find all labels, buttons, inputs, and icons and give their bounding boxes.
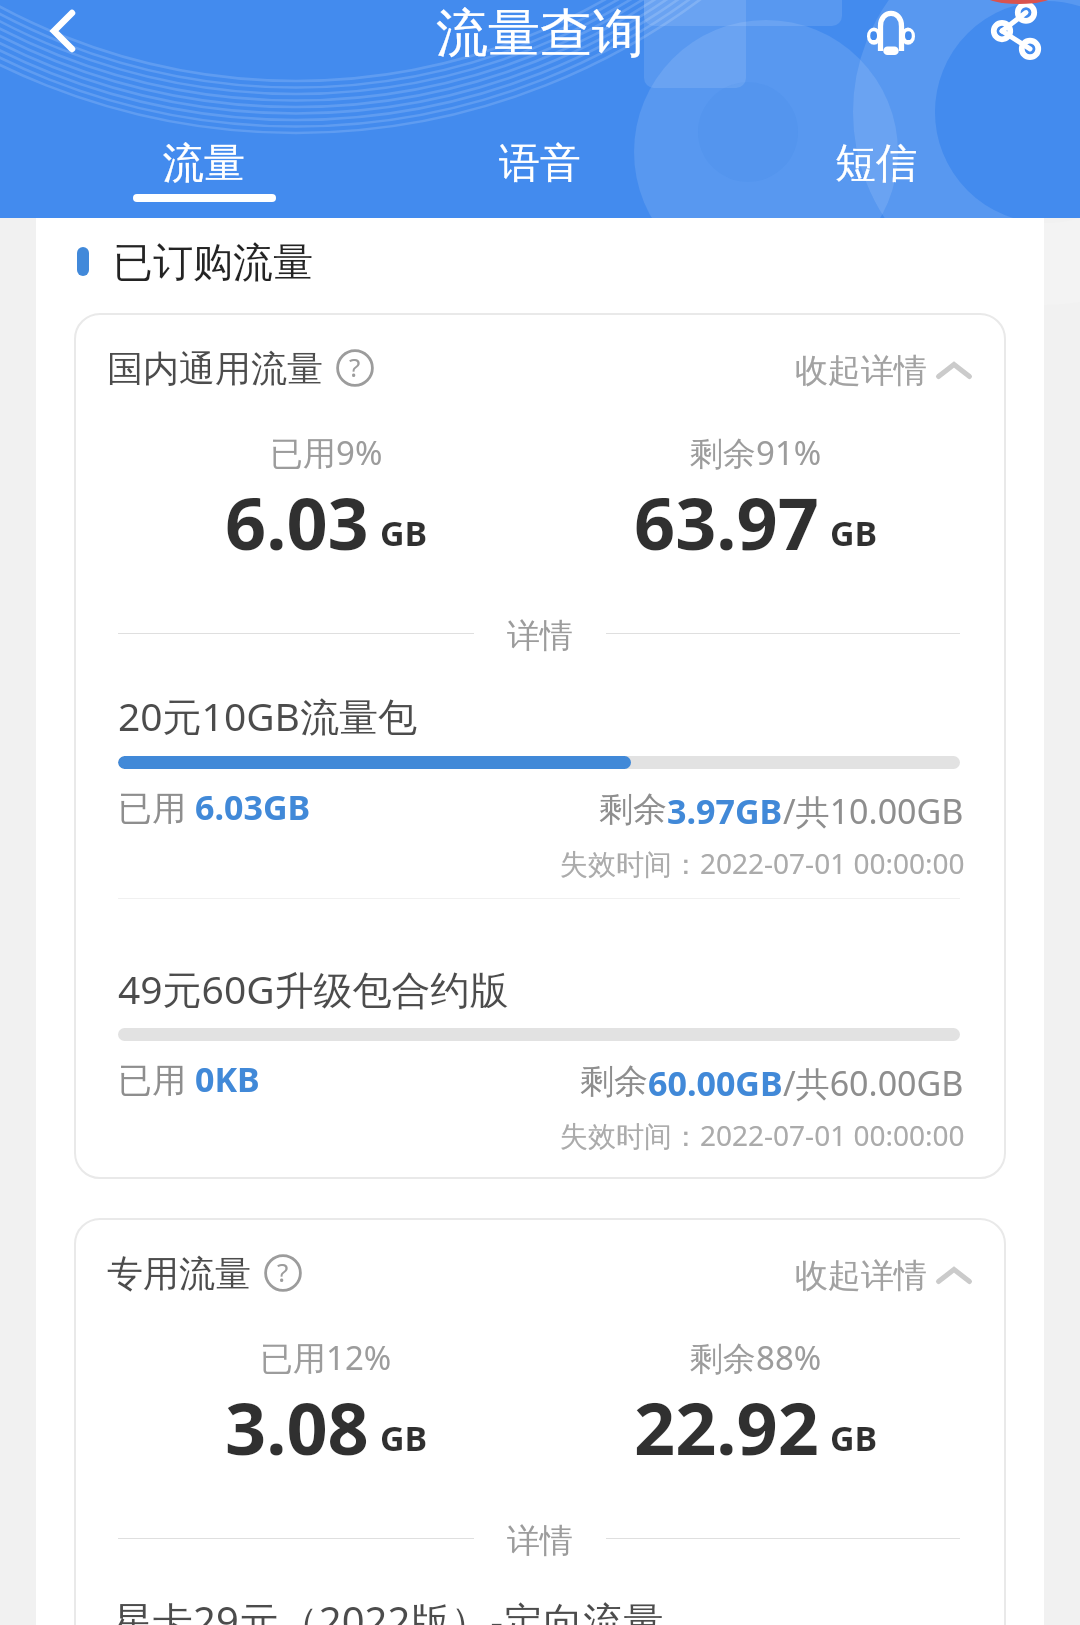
staticText: 6.03GB	[195, 784, 311, 830]
staticText: 已用	[118, 784, 195, 830]
staticText: 已用12%	[260, 1335, 392, 1380]
staticText: 失效时间：2022-07-01 00:00:00	[560, 844, 965, 882]
button[interactable]: Help	[264, 1254, 302, 1292]
staticText: 22.92	[634, 1378, 819, 1476]
staticText: 详情	[507, 1520, 573, 1562]
staticText: 星卡29元（2022版）-定向流量	[113, 1593, 664, 1625]
staticText: 63.97	[634, 473, 819, 571]
button[interactable]: Help	[336, 349, 374, 387]
staticText: 3.08	[225, 1378, 369, 1476]
button[interactable]: 国内通用流量	[107, 338, 323, 390]
staticText: 剩余	[580, 1060, 648, 1103]
button[interactable]: 收起详情	[785, 1247, 985, 1301]
button[interactable]: Customer service	[846, 0, 936, 66]
staticText: 收起详情	[795, 1255, 927, 1297]
staticText: 0KB	[195, 1056, 260, 1102]
staticText: ?	[277, 1254, 289, 1289]
staticText: 详情	[507, 615, 573, 657]
staticText: GB	[830, 510, 878, 556]
button[interactable]: 流量	[36, 110, 372, 218]
staticText: 专用流量	[107, 1251, 251, 1296]
staticText: /共60.00GB	[783, 1060, 964, 1106]
staticText: 已用	[118, 1056, 195, 1102]
staticText: 20元10GB流量包	[118, 689, 417, 742]
staticText: 失效时间：2022-07-01 00:00:00	[560, 1116, 965, 1154]
staticText: 已订购流量	[113, 237, 313, 287]
staticText: 60.00GB	[648, 1060, 783, 1106]
staticText: GB	[380, 1415, 428, 1461]
staticText: 国内通用流量	[107, 346, 323, 391]
staticText: 收起详情	[795, 350, 927, 392]
staticText: 流量	[163, 138, 245, 190]
staticText: 语音	[499, 138, 581, 190]
staticText: 49元60G升级包合约版	[118, 962, 509, 1015]
staticText: 已用9%	[270, 430, 383, 475]
staticText: 剩余88%	[690, 1335, 822, 1380]
staticText: 流量查询	[436, 1, 644, 67]
staticText: 3.97GB	[667, 788, 783, 834]
staticText: 短信	[835, 138, 917, 190]
staticText: 剩余	[599, 788, 667, 831]
button[interactable]: Back	[18, 0, 108, 64]
button[interactable]: 专用流量	[107, 1243, 251, 1295]
staticText: GB	[830, 1415, 878, 1461]
staticText: 6.03	[225, 473, 369, 571]
button[interactable]: 短信	[708, 110, 1044, 218]
button[interactable]: 收起详情	[785, 342, 985, 396]
staticText: /共10.00GB	[783, 788, 964, 834]
staticText: 剩余91%	[690, 430, 822, 475]
staticText: GB	[380, 510, 428, 556]
button[interactable]: 语音	[372, 110, 708, 218]
button[interactable]: Share	[971, 0, 1061, 65]
staticText: ?	[349, 349, 361, 384]
